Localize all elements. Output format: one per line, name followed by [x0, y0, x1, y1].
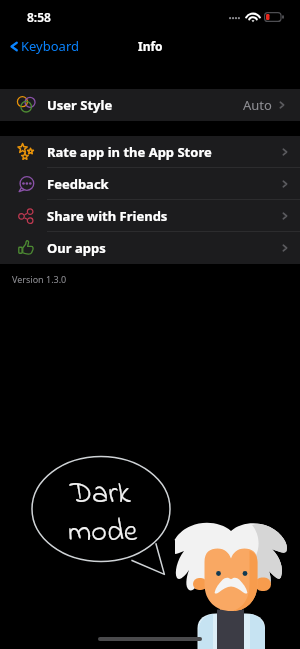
button[interactable]: User Style	[0, 89, 300, 121]
button[interactable]: Our apps	[0, 232, 300, 264]
staticText: mode	[68, 511, 138, 555]
staticText: Keyboard	[21, 37, 80, 55]
button[interactable]: Feedback	[0, 168, 300, 200]
staticText: Rate app in the App Store	[47, 143, 212, 161]
button[interactable]: Keyboard	[9, 37, 80, 55]
staticText: 8:58	[27, 9, 51, 25]
staticText: Auto	[243, 96, 272, 114]
staticText: Info	[138, 38, 163, 54]
staticText: Dark	[70, 473, 131, 517]
staticText: Share with Friends	[47, 207, 168, 225]
staticText: User Style	[47, 96, 113, 114]
button[interactable]: Rate app in the App Store	[0, 136, 300, 168]
staticText: Our apps	[47, 239, 106, 257]
button[interactable]: Share with Friends	[0, 200, 300, 232]
staticText: Feedback	[47, 175, 109, 193]
staticText: Version 1.3.0	[12, 273, 67, 285]
